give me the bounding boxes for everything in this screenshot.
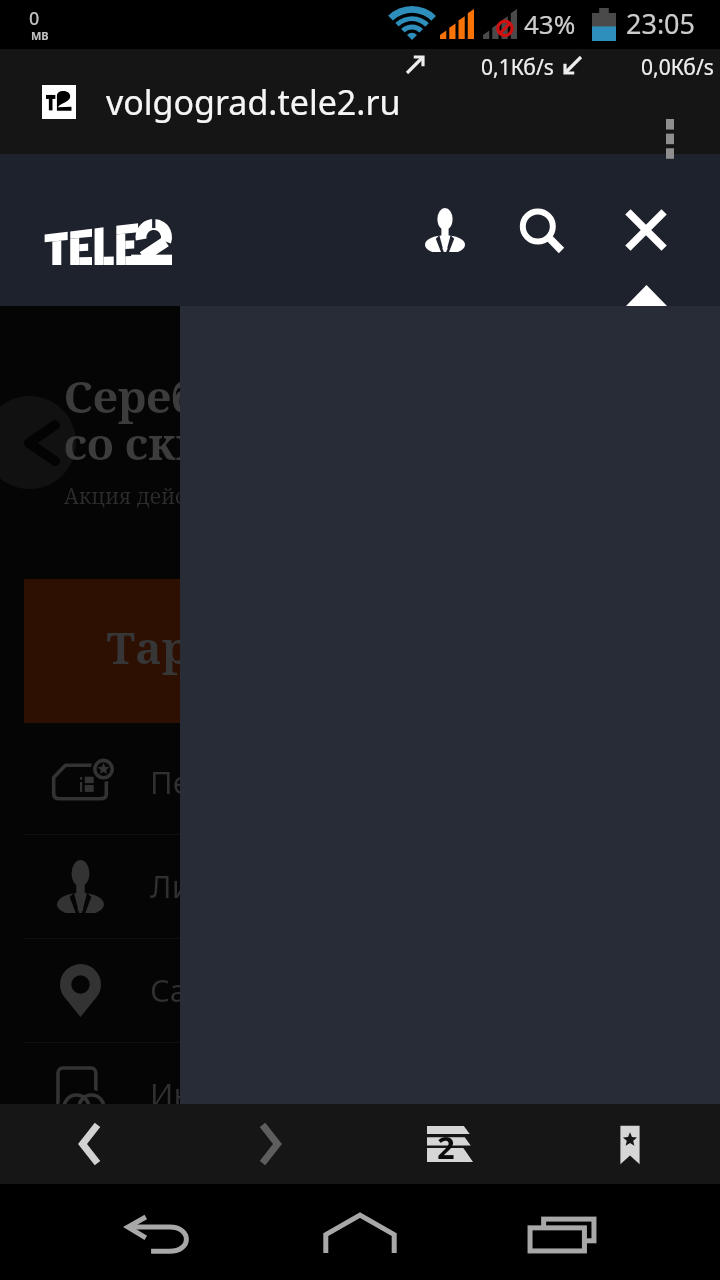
staticText: 0 bbox=[29, 6, 40, 31]
button[interactable]: Recents bbox=[498, 1194, 626, 1274]
button[interactable]: Close menu bbox=[604, 197, 688, 263]
staticText: Салоны связи bbox=[150, 969, 360, 1011]
button[interactable]: Home bbox=[296, 1193, 424, 1273]
button[interactable]: Личный кабинет bbox=[0, 834, 720, 938]
staticText: 0,1Кб/s bbox=[481, 53, 554, 82]
staticText: со скидкой bbox=[64, 413, 317, 473]
staticText: MB bbox=[31, 28, 49, 43]
staticText: Перейти в Tele2 bbox=[150, 761, 389, 803]
button[interactable]: Previous slide bbox=[25, 396, 76, 489]
button[interactable]: Account bbox=[403, 197, 487, 263]
button[interactable]: Back bbox=[95, 1195, 223, 1275]
staticText: 43% bbox=[524, 6, 576, 41]
staticText: Личный кабинет bbox=[150, 865, 401, 907]
button[interactable]: Интернет bbox=[0, 1042, 720, 1146]
button[interactable]: Back bbox=[0, 1104, 180, 1184]
staticText: 0,0Кб/s bbox=[641, 53, 714, 82]
button[interactable]: Search bbox=[500, 198, 584, 264]
button[interactable]: Перейти в Tele2 bbox=[0, 730, 720, 834]
button[interactable]: Forward bbox=[180, 1104, 360, 1184]
staticText: Тарифы bbox=[106, 617, 295, 677]
button[interactable]: More options bbox=[644, 107, 696, 169]
staticText: 2 bbox=[437, 1126, 455, 1162]
button[interactable]: Bookmarks bbox=[540, 1104, 720, 1184]
staticText: Интернет bbox=[150, 1073, 293, 1115]
button[interactable]: Тарифы bbox=[24, 579, 534, 723]
button[interactable]: Салоны связи bbox=[0, 938, 720, 1042]
staticText: volgograd.tele2.ru bbox=[106, 79, 401, 125]
staticText: Серебро bbox=[64, 366, 253, 426]
button[interactable]: Tabs: 2 open bbox=[360, 1104, 540, 1184]
staticText: 23:05 bbox=[626, 5, 696, 42]
staticText: Акция действует до 31 марта bbox=[64, 482, 374, 511]
